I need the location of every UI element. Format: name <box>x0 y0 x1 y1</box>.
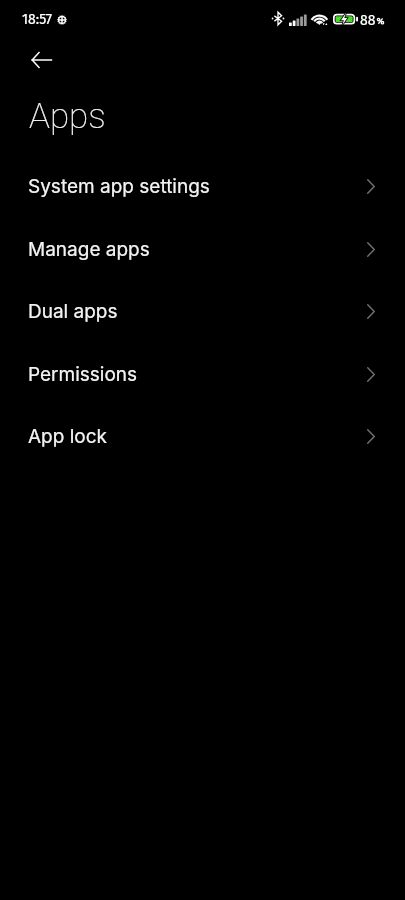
button[interactable]: Dual apps <box>0 280 405 343</box>
staticText: 88 <box>360 12 376 29</box>
staticText: Permissions <box>28 363 138 386</box>
button[interactable]: Permissions <box>0 343 405 406</box>
staticText: 18:57 <box>22 11 53 28</box>
staticText: App lock <box>28 425 107 448</box>
staticText: Dual apps <box>28 300 118 323</box>
button[interactable]: App lock <box>0 405 405 468</box>
button[interactable]: Back <box>17 36 65 84</box>
button[interactable]: System app settings <box>0 155 405 218</box>
staticText: Apps <box>29 96 106 137</box>
button[interactable]: Manage apps <box>0 218 405 281</box>
staticText: Manage apps <box>28 238 150 261</box>
staticText: System app settings <box>28 175 210 198</box>
